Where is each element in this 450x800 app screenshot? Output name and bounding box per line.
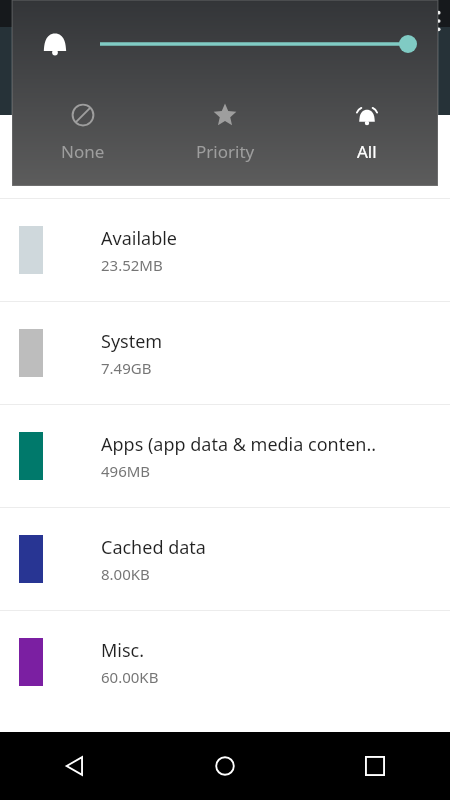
button[interactable]: Cached data [0, 508, 450, 610]
button[interactable]: Apps (app data & media conten.. [0, 405, 450, 507]
staticText: Misc. [101, 638, 145, 663]
button[interactable]: Back [0, 732, 150, 800]
staticText: 60.00KB [101, 667, 159, 687]
button[interactable]: Home [150, 732, 300, 800]
button[interactable]: All [296, 90, 438, 163]
staticText: Priority [196, 140, 255, 163]
button[interactable]: Priority [154, 90, 296, 163]
staticText: 23.52MB [101, 255, 163, 275]
staticText: 496MB [101, 461, 151, 481]
staticText: Available [101, 226, 177, 251]
staticText: System [101, 329, 163, 354]
staticText: None [61, 140, 105, 163]
button[interactable]: System [0, 302, 450, 404]
button[interactable]: Available [0, 199, 450, 301]
staticText: Apps (app data & media conten.. [101, 432, 377, 457]
button[interactable]: None [12, 90, 154, 163]
button[interactable]: Misc. [0, 611, 450, 713]
staticText: 7.49GB [101, 358, 152, 378]
staticText: 8.00KB [101, 564, 150, 584]
staticText: Cached data [101, 535, 206, 560]
other: Ring volume [40, 30, 70, 60]
button[interactable]: Recent apps [300, 732, 450, 800]
other: More options [432, 8, 448, 34]
staticText: All [357, 140, 377, 163]
